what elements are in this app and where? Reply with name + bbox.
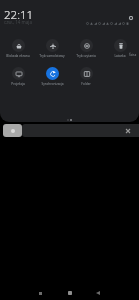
- button[interactable]: Back: [91, 286, 105, 300]
- staticText: Folder: [81, 82, 91, 86]
- staticText: Synchronizacja: [41, 82, 64, 86]
- button[interactable]: [3, 124, 22, 137]
- button[interactable]: Projekcja: [1, 67, 35, 86]
- staticText: Projekcja: [11, 82, 25, 86]
- staticText: Blokada ekranu: [6, 54, 30, 58]
- button[interactable]: Recent apps: [33, 286, 47, 300]
- staticText: czw., 14 maja: [4, 19, 32, 25]
- button[interactable]: Folder: [69, 67, 103, 86]
- button[interactable]: Dismiss notification: [123, 126, 132, 135]
- button[interactable]: Settings: [126, 13, 136, 23]
- button[interactable]: Tryb samolotowy: [35, 39, 69, 58]
- staticText: Latarka: [114, 54, 126, 58]
- button[interactable]: [22, 124, 139, 137]
- button[interactable]: Synchronizacja: [35, 67, 69, 86]
- button[interactable]: Blokada ekranu: [1, 39, 35, 58]
- staticText: Ścisz: [129, 53, 137, 57]
- staticText: Tryb samolotowy: [39, 54, 65, 58]
- button[interactable]: Home: [63, 286, 77, 300]
- staticText: 22:11: [4, 7, 34, 23]
- button[interactable]: Latarka: [103, 39, 137, 58]
- button[interactable]: Tryb czytania: [69, 39, 103, 58]
- staticText: Tryb czytania: [76, 54, 96, 58]
